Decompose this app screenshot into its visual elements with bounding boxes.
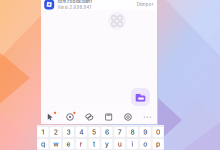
staticText: t [93, 140, 95, 148]
staticText: 8 [130, 128, 134, 136]
button[interactable]: y [101, 139, 112, 149]
staticText: 6 [105, 128, 109, 136]
button[interactable]: Tool 2 [60, 110, 80, 124]
button[interactable]: 7 [114, 127, 125, 137]
staticText: 7 [118, 128, 122, 136]
button[interactable]: Tool 1 [41, 110, 60, 124]
button[interactable]: w [50, 139, 61, 149]
staticText: Diimpor [137, 2, 154, 7]
staticText: 3 [66, 128, 70, 136]
button[interactable]: 6 [101, 127, 112, 137]
button[interactable]: Tool 3 [80, 110, 99, 124]
button[interactable]: 5 [89, 127, 100, 137]
staticText: • • • [143, 115, 151, 119]
button[interactable]: 4 [76, 127, 87, 137]
button[interactable]: More [138, 110, 157, 124]
staticText: 4 [79, 128, 83, 136]
button[interactable]: e [63, 139, 74, 149]
staticText: y [105, 140, 109, 148]
button[interactable]: 9 [140, 127, 151, 137]
button[interactable]: r [76, 139, 87, 149]
staticText: Versi: 2.698.941 [57, 5, 91, 10]
button[interactable]: o [140, 139, 151, 149]
staticText: q [41, 140, 45, 148]
button[interactable]: Tool 5 [118, 110, 138, 124]
button[interactable]: Tool 4 [99, 110, 118, 124]
staticText: w [53, 140, 58, 148]
staticText: e [66, 140, 70, 148]
staticText: i [131, 140, 133, 148]
staticText: r [80, 140, 83, 148]
staticText: 2 [54, 128, 58, 136]
button[interactable]: i [127, 139, 138, 149]
button[interactable]: u [114, 139, 125, 149]
button[interactable]: Open folder [131, 88, 150, 106]
staticText: 1 [41, 128, 44, 136]
button[interactable]: 3 [63, 127, 74, 137]
staticText: o [143, 140, 147, 148]
button[interactable]: 2 [50, 127, 61, 137]
staticText: 5 [92, 128, 96, 136]
button[interactable]: 0 [153, 127, 164, 137]
button[interactable]: p [153, 139, 164, 149]
staticText: 0 [156, 128, 160, 136]
staticText: u [118, 140, 122, 148]
button[interactable]: 8 [127, 127, 138, 137]
button[interactable]: 1 [37, 127, 48, 137]
staticText: com.roblox.client [57, 0, 91, 4]
button[interactable]: t [89, 139, 100, 149]
staticText: 9 [143, 128, 147, 136]
staticText: p [156, 140, 160, 148]
button[interactable]: q [37, 139, 48, 149]
